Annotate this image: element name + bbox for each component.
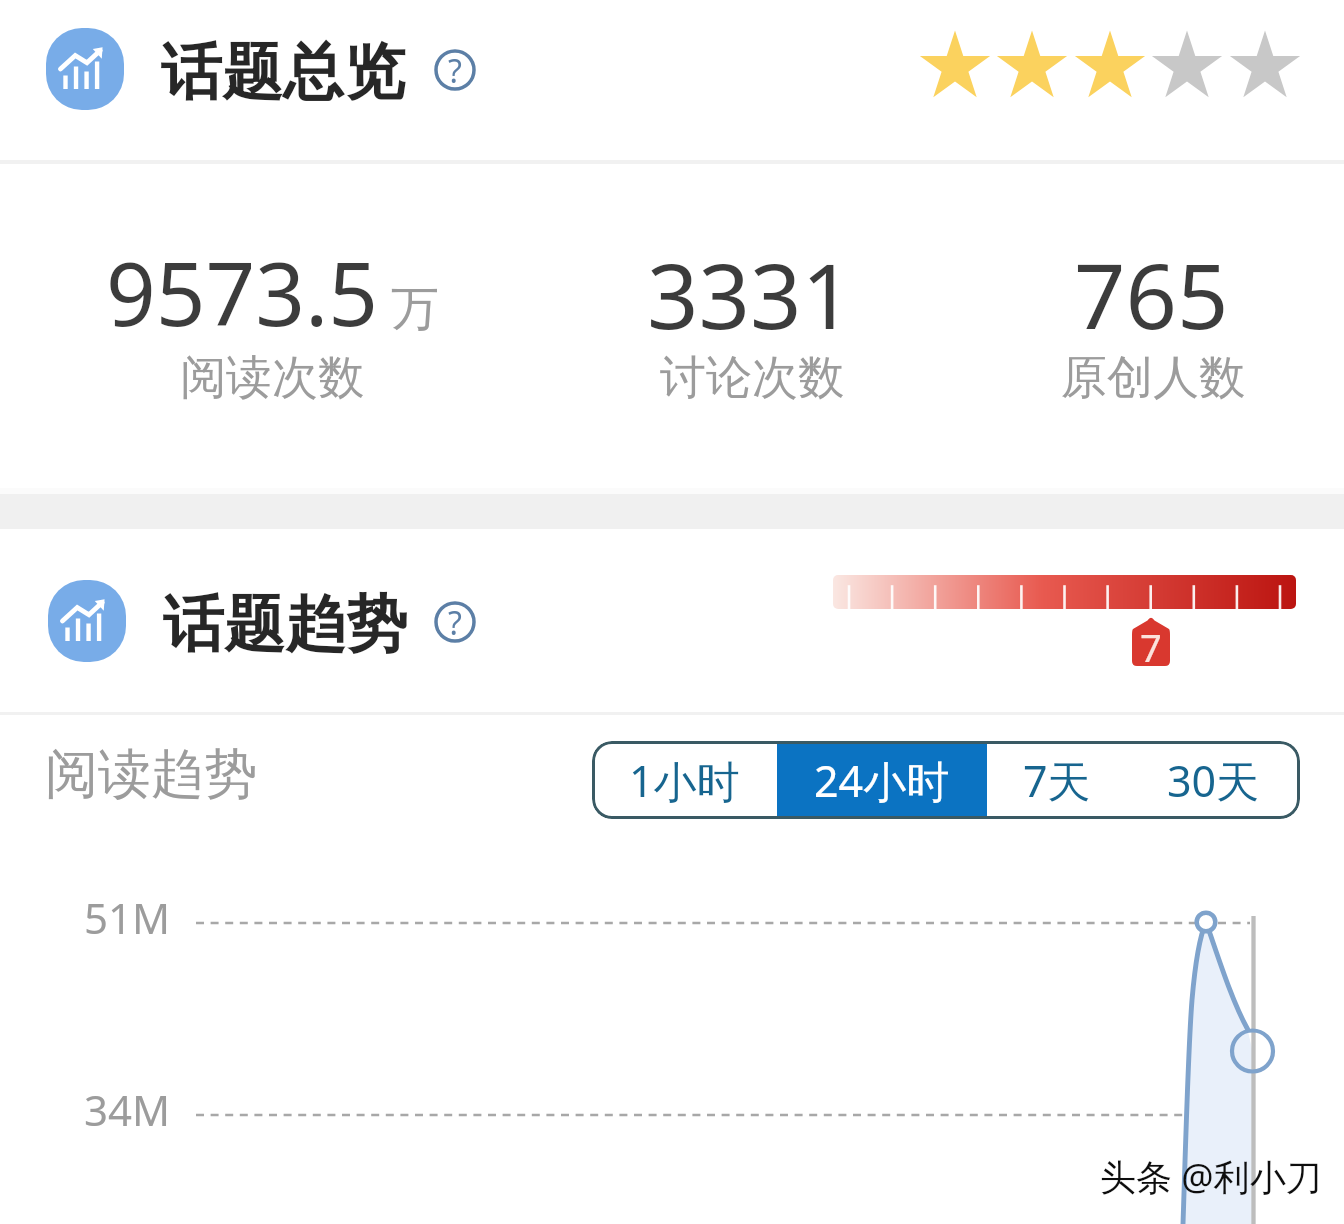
button[interactable] [40,14,480,146]
staticText: 765 [1074,233,1229,356]
button[interactable]: 话题总览说明 [434,49,476,91]
button[interactable]: 1小时 [592,741,777,819]
button[interactable]: 评分 3 星 [914,24,1306,106]
button[interactable]: 热度 7 [833,575,1296,670]
button[interactable]: 话题趋势说明 [434,601,476,643]
staticText: 头条 @利小刀 [1100,1152,1322,1201]
button[interactable]: 30天 [1127,741,1300,819]
staticText: 7 [1140,621,1162,673]
staticText: 24小时 [814,751,950,810]
staticText: 阅读趋势 [45,741,257,808]
staticText: 3331 [647,233,853,356]
staticText: 9573.5 [106,233,379,351]
button[interactable]: 阅读次数 9573.5 [46,214,406,414]
staticText: 阅读次数 [180,349,364,407]
staticText: 51M [84,889,171,946]
staticText: ? [448,49,462,91]
button[interactable]: 原创人数 765 [1014,214,1344,414]
staticText: ? [448,601,462,643]
button[interactable] [40,566,480,678]
staticText: 7天 [1023,751,1091,810]
button[interactable]: 24小时 [777,741,987,819]
staticText: 34M [84,1081,171,1138]
staticText: 万 [391,279,439,339]
staticText: 原创人数 [1061,349,1245,407]
staticText: 话题趋势 [163,586,407,663]
staticText: 讨论次数 [660,349,844,407]
button[interactable]: 讨论次数 3331 [587,214,947,414]
staticText: 30天 [1167,751,1260,810]
staticText: 1小时 [629,751,740,810]
staticText: 话题总览 [161,34,405,111]
button[interactable]: 7天 [987,741,1127,819]
